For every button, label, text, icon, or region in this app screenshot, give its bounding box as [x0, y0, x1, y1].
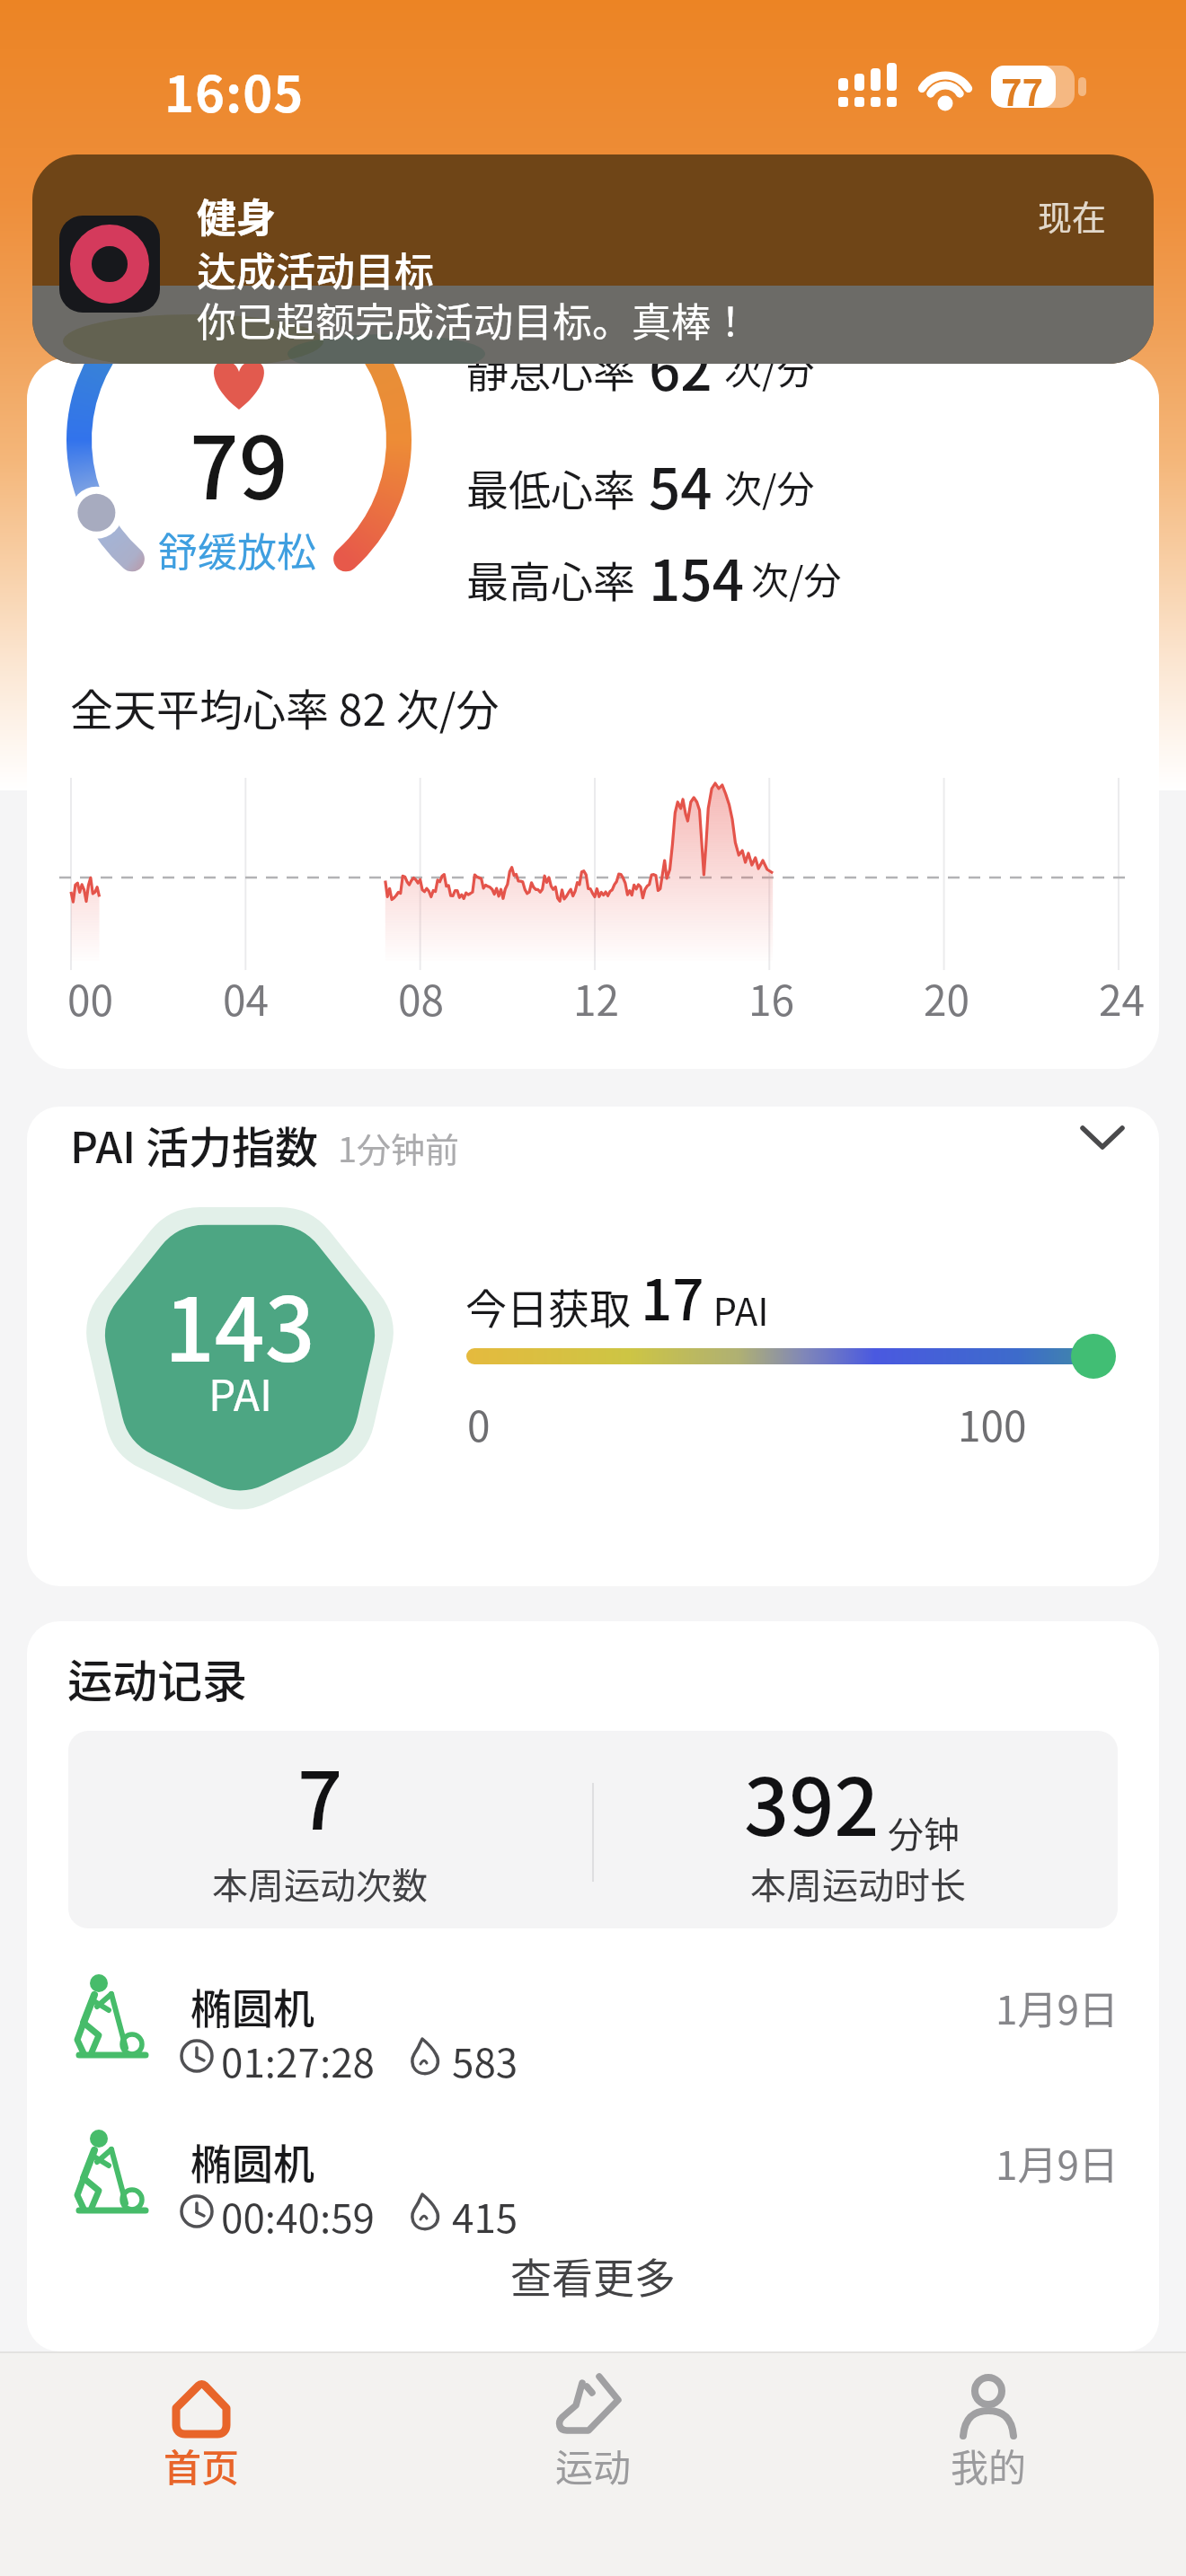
staticText: 你已超额完成活动目标。真棒！ [197, 291, 750, 348]
staticText: 143 [164, 1259, 315, 1387]
staticText: PAI [704, 1282, 769, 1337]
staticText: 415 [452, 2187, 518, 2245]
staticText: 次/分 [724, 459, 815, 514]
staticText: 分钟 [880, 1806, 960, 1858]
staticText: 舒缓放松 [158, 521, 316, 578]
staticText: 154 [649, 536, 745, 617]
staticText: 17 [641, 1256, 704, 1337]
staticText: 本周运动时长 [750, 1857, 966, 1910]
staticText: 全天平均心率 82 次/分 [70, 675, 500, 738]
staticText: 54 [649, 445, 712, 525]
staticText: 1月9日 [996, 1979, 1119, 2036]
staticText: 16:05 [164, 54, 305, 127]
button[interactable] [395, 2351, 791, 2576]
staticText: 77 [1001, 65, 1044, 117]
staticText: 01:27:28 [221, 2032, 375, 2089]
button[interactable] [32, 154, 1154, 364]
staticText: 16 [748, 968, 795, 1028]
staticText: 运动 [555, 2438, 632, 2492]
button[interactable] [0, 2351, 395, 2576]
staticText: 0 [467, 1394, 491, 1454]
staticText: 静息心率 [466, 338, 635, 399]
staticText: 08 [398, 968, 445, 1028]
staticText: 查看更多 [510, 2245, 676, 2306]
staticText: 100 [958, 1394, 1027, 1454]
staticText: 62 [649, 326, 712, 407]
staticText: 1月9日 [996, 2134, 1119, 2192]
staticText: 最低心率 [466, 456, 635, 517]
staticText: 椭圆机 [190, 2131, 314, 2192]
staticText: 今日获取 [465, 1276, 641, 1337]
staticText: 12 [573, 968, 620, 1028]
staticText: 392 [744, 1744, 880, 1858]
staticText: 健身 [197, 187, 276, 244]
staticText: 79 [190, 400, 288, 525]
staticText: 次/分 [751, 551, 842, 605]
staticText: 最高心率 [466, 548, 635, 609]
button[interactable] [27, 1107, 1159, 1586]
button[interactable] [68, 1949, 1118, 2084]
button[interactable] [413, 2236, 773, 2308]
staticText: 00 [67, 968, 114, 1028]
button[interactable] [68, 2104, 1118, 2239]
staticText: 达成活动目标 [197, 241, 434, 298]
staticText: PAI [208, 1361, 272, 1424]
staticText: 运动记录 [67, 1645, 247, 1710]
button[interactable] [791, 2351, 1186, 2576]
staticText: 24 [1099, 968, 1146, 1028]
staticText: 椭圆机 [190, 1976, 314, 2036]
staticText: 7 [297, 1738, 343, 1852]
staticText: 本周运动次数 [212, 1857, 428, 1910]
staticText: 00:40:59 [221, 2187, 375, 2245]
staticText: 20 [924, 968, 970, 1028]
staticText: PAI 活力指数 [70, 1113, 318, 1176]
staticText: 583 [452, 2032, 518, 2089]
staticText: 我的 [951, 2438, 1027, 2492]
staticText: 04 [223, 968, 270, 1028]
staticText: 1分钟前 [338, 1123, 460, 1172]
staticText: 现在 [1038, 190, 1107, 240]
staticText: 首页 [164, 2438, 240, 2492]
staticText: 次/分 [724, 340, 815, 395]
